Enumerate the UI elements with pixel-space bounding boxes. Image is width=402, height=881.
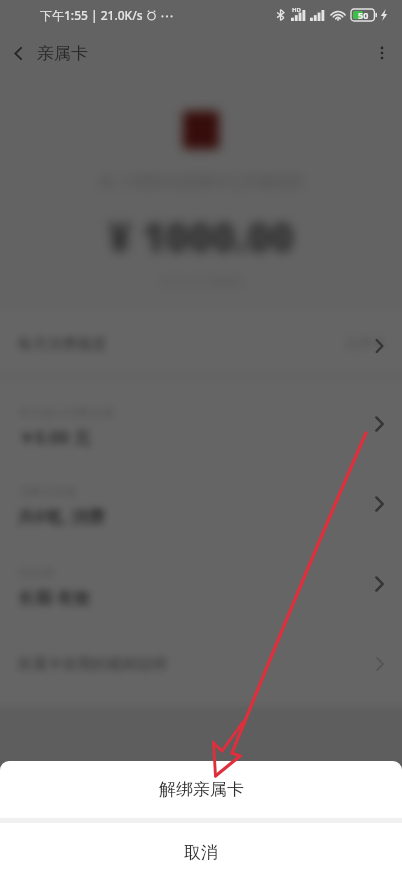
staticText: 50: [358, 9, 369, 21]
staticText: 亲属卡: [37, 43, 88, 64]
staticText: 下午1:55 | 21.0K/s: [40, 7, 143, 23]
staticText: 已开卡: [346, 335, 385, 351]
button[interactable]: Back: [0, 30, 37, 76]
button[interactable]: 取消: [0, 823, 402, 881]
staticText: 解绑亲属卡: [159, 779, 244, 800]
button[interactable]: 解绑亲属卡: [0, 761, 402, 818]
staticText: 共0笔, 消费: [18, 505, 105, 528]
staticText: ￥0.00 元: [18, 426, 91, 449]
staticText: 每月消费额度: [17, 335, 107, 354]
staticText: HD: [292, 6, 301, 14]
button[interactable]: More options: [362, 30, 402, 76]
staticText: 长期 有效: [18, 586, 91, 609]
staticText: 亲属卡使用的规则说明: [17, 655, 167, 674]
staticText: ¥ 1000.00: [108, 209, 295, 263]
staticText: 取消: [184, 842, 218, 863]
